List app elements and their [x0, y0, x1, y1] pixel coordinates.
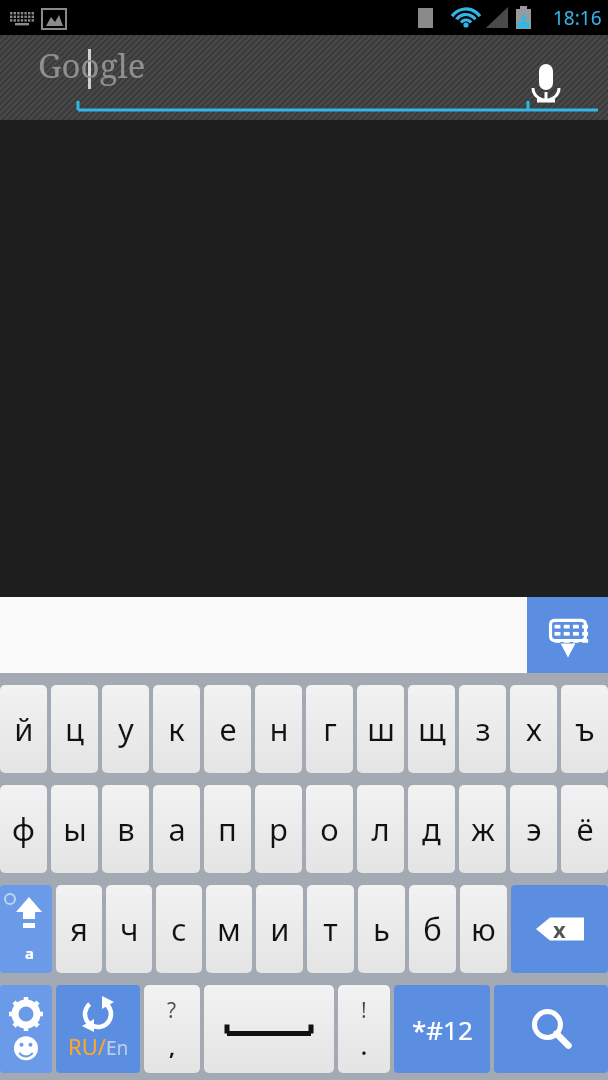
staticText: я [70, 908, 88, 950]
button[interactable]: ф [0, 785, 47, 873]
staticText: , [169, 1033, 175, 1062]
staticText: ы [63, 808, 87, 850]
staticText: ч [120, 908, 139, 950]
staticText: *#12 [412, 1012, 473, 1047]
staticText: г [323, 708, 337, 750]
button[interactable]: т [307, 885, 354, 973]
button[interactable]: щ [408, 685, 455, 773]
button[interactable]: Settings [0, 985, 52, 1073]
button[interactable]: п [204, 785, 251, 873]
button[interactable]: ! [338, 985, 390, 1073]
button[interactable]: х [510, 685, 557, 773]
staticText: х [526, 708, 542, 750]
staticText: ! [361, 996, 367, 1025]
button[interactable]: Shift [0, 885, 52, 973]
button[interactable]: а [153, 785, 200, 873]
staticText: ь [373, 908, 390, 950]
button[interactable]: ы [51, 785, 98, 873]
button[interactable]: г [306, 685, 353, 773]
staticText: п [218, 808, 237, 850]
button[interactable]: Switch language [56, 985, 140, 1073]
button[interactable]: ш [357, 685, 404, 773]
button[interactable]: ь [358, 885, 405, 973]
button[interactable]: в [102, 785, 149, 873]
button[interactable]: *#12 [394, 985, 490, 1073]
staticText: в [117, 808, 135, 850]
button[interactable]: к [153, 685, 200, 773]
staticText: x [553, 914, 566, 944]
staticText: н [269, 708, 289, 750]
staticText: ю [471, 908, 496, 950]
staticText: ц [65, 708, 84, 750]
staticText: a [25, 943, 34, 963]
button[interactable]: л [357, 785, 404, 873]
button[interactable]: у [102, 685, 149, 773]
staticText: с [171, 908, 187, 950]
button[interactable]: з [459, 685, 506, 773]
button[interactable]: Google [0, 35, 608, 120]
staticText: ф [12, 808, 35, 850]
button[interactable]: м [206, 885, 252, 973]
button[interactable]: ж [459, 785, 506, 873]
staticText: и [270, 908, 290, 950]
staticText: к [168, 708, 185, 750]
staticText: ж [471, 808, 495, 850]
staticText: Google [38, 43, 146, 88]
staticText: е [219, 708, 237, 750]
staticText: р [269, 808, 288, 850]
button[interactable]: ё [561, 785, 608, 873]
staticText: ъ [575, 708, 595, 750]
staticText: о [320, 808, 339, 850]
button[interactable]: е [204, 685, 251, 773]
staticText: RU/ [68, 1031, 106, 1061]
staticText: э [526, 808, 542, 850]
staticText: й [14, 708, 34, 750]
button[interactable]: о [306, 785, 353, 873]
button[interactable]: Search [494, 985, 608, 1073]
button[interactable]: Voice search [524, 56, 568, 100]
staticText: м [217, 908, 241, 950]
button[interactable]: Backspace [511, 885, 608, 973]
button[interactable]: ю [460, 885, 507, 973]
staticText: т [323, 908, 338, 950]
staticText: ё [576, 808, 594, 850]
staticText: . [361, 1033, 367, 1062]
staticText: 18:16 [553, 5, 602, 31]
button[interactable]: д [408, 785, 455, 873]
button[interactable]: э [510, 785, 557, 873]
button[interactable]: ? [144, 985, 200, 1073]
button[interactable]: ч [106, 885, 152, 973]
staticText: щ [418, 708, 446, 750]
staticText: б [423, 908, 442, 950]
staticText: л [371, 808, 390, 850]
button[interactable]: и [256, 885, 303, 973]
button[interactable]: ъ [561, 685, 608, 773]
button[interactable]: б [409, 885, 456, 973]
button[interactable]: Space [204, 985, 334, 1073]
button[interactable]: р [255, 785, 302, 873]
staticText: En [106, 1035, 129, 1061]
staticText: ш [367, 708, 395, 750]
staticText: ? [167, 996, 177, 1025]
staticText: д [422, 808, 441, 850]
staticText: у [118, 708, 134, 750]
button[interactable]: н [255, 685, 302, 773]
button[interactable]: ц [51, 685, 98, 773]
staticText: з [475, 708, 491, 750]
button[interactable]: й [0, 685, 47, 773]
button[interactable]: Hide keyboard [527, 597, 608, 673]
button[interactable]: я [56, 885, 102, 973]
button[interactable]: с [156, 885, 202, 973]
staticText: а [168, 808, 186, 850]
